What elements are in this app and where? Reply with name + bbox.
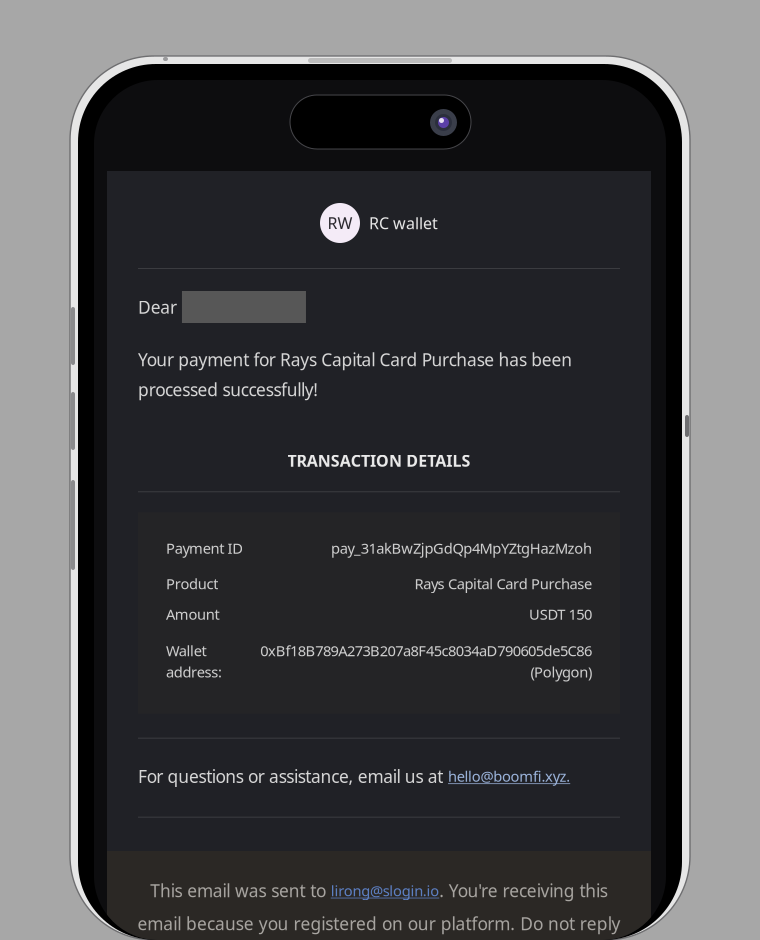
staticText: 0xBf18B789A273B207a8F45c8034aD790605de5C… xyxy=(260,641,592,660)
staticText: TRANSACTION DETAILS xyxy=(288,450,470,471)
staticText: Amount xyxy=(166,604,219,624)
staticText: hello@boomfi.xyz. xyxy=(448,766,570,786)
staticText: RW xyxy=(327,212,352,234)
staticText: processed successfully! xyxy=(138,378,318,401)
staticText: Rays Capital Card Purchase xyxy=(414,574,592,593)
staticText: Wallet xyxy=(166,641,206,660)
staticText: RC wallet xyxy=(369,212,438,234)
staticText: USDT 150 xyxy=(529,604,592,624)
staticText: For questions or assistance, email us at xyxy=(138,765,448,788)
button[interactable]: lirong@slogin.io xyxy=(331,881,439,900)
staticText: email because you registered on our plat… xyxy=(137,912,621,935)
button[interactable]: hello@boomfi.xyz. xyxy=(448,766,570,786)
staticText: Payment ID xyxy=(166,538,243,558)
staticText: Your payment for Rays Capital Card Purch… xyxy=(138,348,572,371)
staticText: This email was sent to xyxy=(150,879,331,902)
staticText: pay_31akBwZjpGdQp4MpYZtgHazMzoh xyxy=(331,538,592,558)
staticText: Dear xyxy=(138,295,177,318)
staticText: address: xyxy=(166,662,222,682)
staticText: (Polygon) xyxy=(530,662,592,682)
staticText: . You're receiving this xyxy=(439,879,608,902)
staticText: Product xyxy=(166,574,218,593)
staticText: lirong@slogin.io xyxy=(331,881,439,900)
